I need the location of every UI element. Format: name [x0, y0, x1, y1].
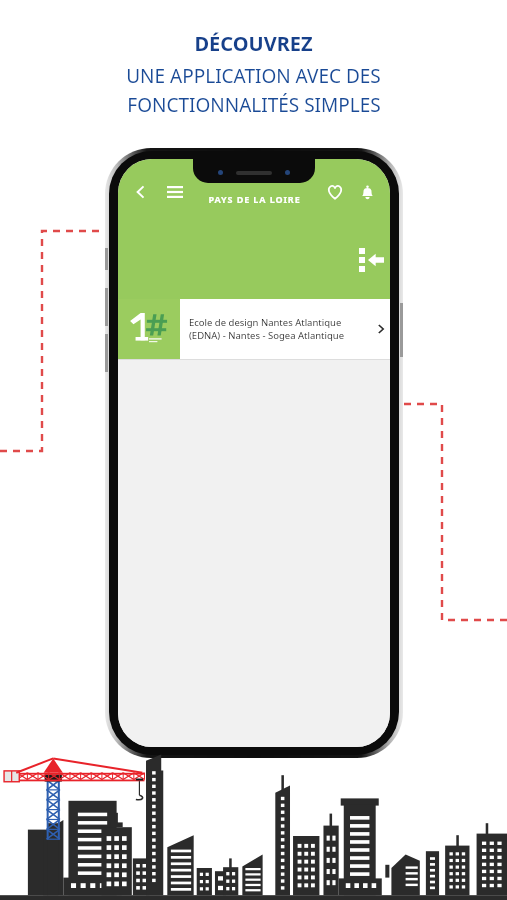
button[interactable]: Menu	[162, 179, 188, 205]
staticText: PAYS DE LA LOIRE	[208, 193, 301, 205]
staticText: UNE APPLICATION AVEC DES	[126, 63, 381, 89]
staticText: FONCTIONNALITÉS SIMPLES	[127, 92, 381, 118]
button[interactable]: Favorites	[322, 179, 348, 205]
button[interactable]: Ecole de design Nantes Atlantique (EDNA)…	[118, 299, 390, 359]
button[interactable]: Notifications	[354, 179, 380, 205]
staticText: Ecole de design Nantes Atlantique (EDNA)…	[189, 316, 372, 342]
staticText: DÉCOUVREZ	[194, 30, 313, 57]
button[interactable]: Collapse panel	[359, 243, 384, 277]
button[interactable]: Back	[128, 179, 154, 205]
